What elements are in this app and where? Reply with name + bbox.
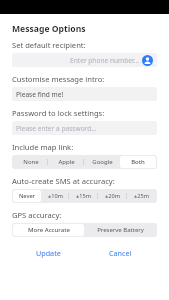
staticText: ±15m xyxy=(76,192,91,200)
button[interactable]: Never xyxy=(13,190,41,202)
staticText: Update xyxy=(36,248,61,258)
staticText: Please enter a password... xyxy=(16,124,153,133)
staticText: Enter phone number... xyxy=(16,56,139,65)
staticText: Set default recipient: xyxy=(12,40,86,50)
button[interactable]: ±15m xyxy=(69,190,98,202)
button[interactable]: Enter phone number... xyxy=(12,53,157,67)
button[interactable]: Update xyxy=(12,246,84,260)
staticText: ±25m xyxy=(134,192,149,200)
staticText: Google xyxy=(92,158,113,166)
staticText: Customise message intro: xyxy=(12,74,105,84)
staticText: Both xyxy=(131,158,145,166)
staticText: ±20m xyxy=(105,192,120,200)
staticText: ±10m xyxy=(48,192,63,200)
button[interactable]: Please enter a password... xyxy=(12,121,157,135)
staticText: More Accurate xyxy=(28,226,70,234)
button[interactable]: Google xyxy=(84,156,120,168)
button[interactable]: More Accurate xyxy=(13,224,84,236)
staticText: Password to lock settings: xyxy=(12,108,105,118)
button[interactable]: Both xyxy=(120,156,156,168)
staticText: Never xyxy=(19,192,35,200)
button[interactable]: ±20m xyxy=(98,190,127,202)
staticText: Apple xyxy=(58,158,75,166)
staticText: Message Options xyxy=(12,23,86,35)
button[interactable]: Cancel xyxy=(84,246,157,260)
staticText: GPS accuracy: xyxy=(12,210,62,220)
button[interactable]: Preserve Battery xyxy=(84,224,156,236)
button[interactable]: ±25m xyxy=(127,190,156,202)
staticText: Include map link: xyxy=(12,142,74,152)
button[interactable]: Please find me! xyxy=(12,87,157,101)
button[interactable]: ±10m xyxy=(41,190,69,202)
staticText: Cancel xyxy=(109,248,132,258)
button[interactable]: Apple xyxy=(48,156,84,168)
button[interactable]: Choose contact xyxy=(142,55,153,66)
staticText: None xyxy=(23,158,39,166)
staticText: Preserve Battery xyxy=(97,226,144,234)
staticText: Auto-create SMS at accuracy: xyxy=(12,176,115,186)
button[interactable]: None xyxy=(13,156,48,168)
staticText: Please find me! xyxy=(16,90,153,99)
